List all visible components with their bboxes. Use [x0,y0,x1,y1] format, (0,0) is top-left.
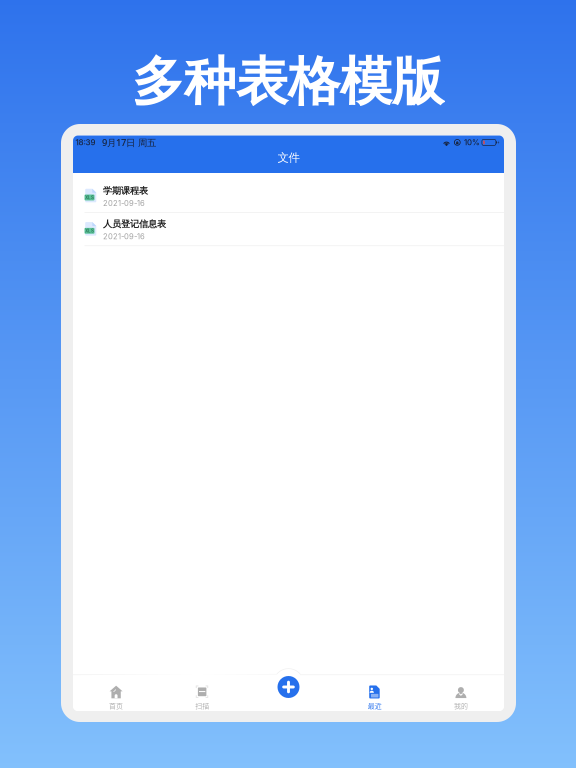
button[interactable]: 最近 [332,685,418,711]
staticText: 我的 [454,700,468,710]
button[interactable]: 我的 [418,685,504,711]
staticText: 扫描 [195,700,209,710]
button[interactable]: 首页 [73,685,159,711]
button[interactable]: 扫描 [159,685,245,711]
staticText: 2021-09-16 [103,199,145,208]
staticText: 首页 [109,700,123,710]
staticText: 学期课程表 [103,185,148,196]
button[interactable]: 新建 [277,676,299,698]
staticText: XLS [85,228,94,234]
staticText: XLS [85,195,94,200]
staticText: 文件 [277,151,299,165]
staticText: 2021-09-16 [103,232,145,241]
staticText: 18:39 [75,138,95,147]
button[interactable]: XLS [73,213,504,246]
staticText: 多种表格模版 [132,49,444,115]
staticText: 10% [464,138,480,147]
staticText: 9月17日 周五 [102,136,156,149]
staticText: 最近 [368,700,382,710]
button[interactable]: XLS [73,179,504,213]
staticText: 人员登记信息表 [103,218,166,230]
